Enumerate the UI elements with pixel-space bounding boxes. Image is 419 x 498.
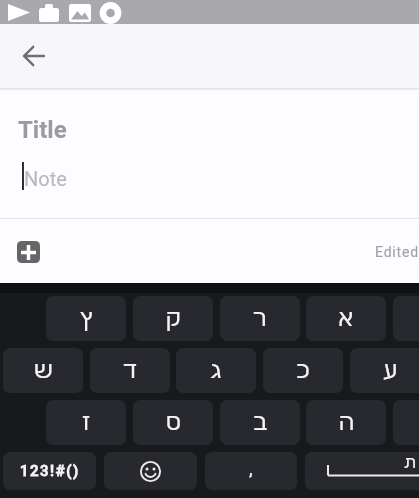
staticText: , [249,457,253,479]
button[interactable]: ז [46,400,126,445]
staticText: Edited [375,244,419,260]
button[interactable]: ג [176,348,256,393]
button[interactable]: 123!#() [3,452,96,490]
staticText: ץ [80,307,93,331]
staticText: Note [24,167,67,190]
button[interactable]: ר [220,296,300,341]
staticText: Title [18,116,67,144]
staticText: ת [404,454,416,471]
staticText: ד [123,359,138,383]
staticText: 123!#() [20,462,80,480]
button[interactable] [17,241,40,263]
staticText: א [338,307,354,331]
staticText: ק [166,307,181,331]
button[interactable]: ה [306,400,386,445]
staticText: ב [253,411,268,435]
button[interactable]: ש [3,348,83,393]
button[interactable]: ד [90,348,170,393]
staticText: ע [383,359,398,383]
button[interactable]: ע [350,348,419,393]
staticText: ש [34,359,53,383]
staticText: ר [253,307,267,331]
button[interactable]: ק [133,296,213,341]
staticText: כ [296,359,310,383]
button[interactable]: כ [263,348,343,393]
button[interactable]: , [205,452,297,490]
button[interactable]: ס [133,400,213,445]
staticText: ה [339,411,354,435]
staticText: ג [210,359,222,383]
button[interactable]: ת [305,452,419,490]
staticText: ז [82,411,91,435]
button[interactable]: א [306,296,386,341]
staticText: ס [166,411,181,435]
button[interactable] [104,452,197,490]
button[interactable]: ץ [46,296,126,341]
button[interactable]: ב [220,400,300,445]
button[interactable] [18,40,50,72]
